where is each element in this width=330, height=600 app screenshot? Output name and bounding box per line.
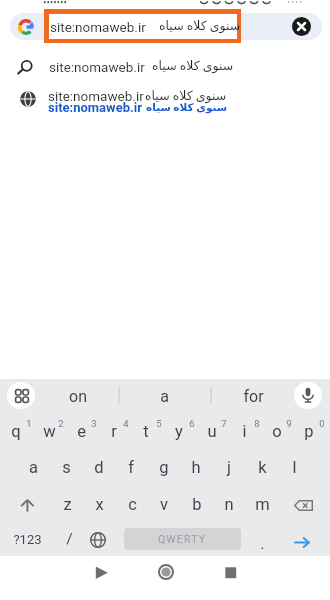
button[interactable] [158,564,174,580]
button[interactable] [10,13,322,40]
button[interactable]: QWERTY [124,528,241,550]
staticText: o [272,422,282,441]
button[interactable] [292,17,311,36]
staticText: f [128,458,134,477]
button[interactable] [225,567,237,579]
staticText: g [159,458,169,477]
button[interactable]: i [228,413,260,449]
staticText: سنوی کلاه سیاه [146,101,228,113]
staticText: 5 [156,418,162,429]
staticText: t [143,422,149,441]
button[interactable] [20,499,35,512]
staticText: r [111,422,117,441]
staticText: 3 [91,418,97,429]
staticText: y [175,422,183,441]
button[interactable]: l [278,449,310,485]
button[interactable]: e [65,413,97,449]
staticText: for [243,387,264,406]
button[interactable] [95,566,109,580]
button[interactable]: k [246,449,278,485]
staticText: x [95,495,104,514]
staticText: d [94,458,104,477]
staticText: l [292,458,297,477]
staticText: 7 [221,418,227,429]
button[interactable]: q [0,413,32,449]
staticText: k [258,458,267,477]
button[interactable]: c [116,486,148,522]
staticText: u [207,422,217,441]
staticText: 1 [26,418,32,429]
button[interactable]: v [148,486,180,522]
button[interactable]: t [130,413,162,449]
button[interactable] [7,382,35,409]
button[interactable]: b [181,486,213,522]
button[interactable]: s [50,449,82,485]
staticText: site:nomaweb.ir [49,59,145,75]
staticText: site:nomaweb.ir [50,19,146,35]
staticText: a [160,387,169,406]
button[interactable]: y [163,413,195,449]
button[interactable]: a [124,381,204,412]
staticText: i [242,422,247,441]
staticText: سنوی کلاه سیاه [145,88,227,103]
staticText: n [224,495,234,514]
staticText: 9 [286,418,292,429]
staticText: / [66,530,73,548]
staticText: e [77,422,86,441]
staticText: on [69,387,87,406]
button[interactable]: m [246,486,278,522]
staticText: h [191,458,201,477]
staticText: m [255,495,270,514]
button[interactable]: . [248,528,276,560]
staticText: c [128,495,137,514]
staticText: 8 [254,418,260,429]
button[interactable]: p [293,413,325,449]
button[interactable]: h [180,449,212,485]
staticText: سنوی کلاه سیاه [152,58,234,73]
button[interactable]: u [196,413,228,449]
staticText: site:nomaweb.ir [48,100,142,115]
staticText: 2 [58,418,64,429]
button[interactable]: w [33,413,65,449]
button[interactable]: o [261,413,293,449]
staticText: b [192,495,202,514]
staticText: j [227,458,231,477]
staticText: site:nomaweb.ir [48,88,144,104]
button[interactable]: ?123 [4,523,50,555]
button[interactable] [90,532,106,548]
staticText: 0 [319,418,325,429]
staticText: q [11,422,21,441]
button[interactable]: z [51,486,83,522]
button[interactable]: on [40,381,116,412]
staticText: QWERTY [158,533,207,545]
button[interactable]: n [213,486,245,522]
button[interactable]: / [54,523,84,555]
staticText: w [43,422,56,441]
staticText: 6 [189,418,195,429]
staticText: s [62,458,71,477]
button[interactable]: x [83,486,115,522]
staticText: a [29,458,38,477]
staticText: سنوی کلاه سیاه [159,18,241,33]
staticText: . [260,535,265,553]
button[interactable]: a [17,449,49,485]
button[interactable] [294,537,310,548]
button[interactable] [0,86,330,118]
button[interactable]: d [83,449,115,485]
button[interactable]: r [98,413,130,449]
button[interactable] [294,500,313,511]
staticText: 4 [123,418,129,429]
staticText: z [63,495,72,514]
button[interactable]: j [213,449,245,485]
button[interactable]: f [115,449,147,485]
button[interactable]: g [148,449,180,485]
staticText: p [304,422,314,441]
button[interactable] [0,53,330,79]
button[interactable] [294,382,322,409]
staticText: v [160,495,168,514]
staticText: ?123 [13,532,42,547]
button[interactable]: for [217,381,289,412]
